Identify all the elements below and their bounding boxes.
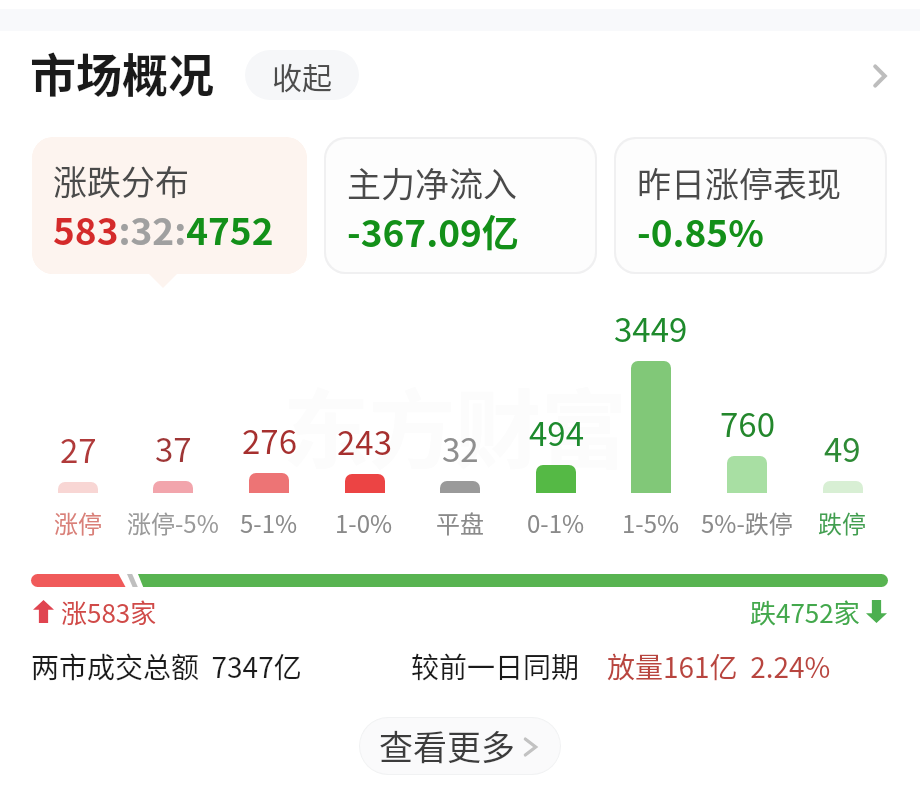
staticText: 两市成交总额 7347亿 (31, 646, 302, 687)
staticText: -0.85% (637, 204, 764, 258)
staticText: 276 (242, 416, 297, 464)
button[interactable] (748, 595, 890, 629)
staticText: 跌4752家 (750, 593, 860, 631)
button[interactable] (797, 300, 889, 540)
button[interactable]: 主力净流入 (326, 139, 595, 272)
staticText: 查看更多 (379, 721, 515, 770)
staticText: 760 (720, 399, 775, 447)
staticText: 3449 (614, 304, 688, 352)
staticText: 涨跌分布 (53, 156, 189, 205)
button[interactable]: 查看更多 (360, 718, 560, 774)
staticText: 东方财富 (283, 362, 627, 487)
staticText: 5-1% (240, 505, 298, 540)
button[interactable] (32, 300, 124, 540)
button[interactable]: 涨跌分布 (32, 137, 307, 274)
staticText: 平盘 (436, 505, 484, 540)
button[interactable]: 昨日涨停表现 (616, 139, 885, 272)
button[interactable] (223, 300, 315, 540)
staticText: 昨日涨停表现 (637, 158, 841, 207)
staticText: 1-5% (622, 505, 680, 540)
staticText: 涨停-5% (127, 505, 219, 540)
button[interactable] (30, 595, 162, 629)
button[interactable] (319, 300, 411, 540)
button[interactable] (701, 300, 793, 540)
staticText: 市场概况 (30, 39, 214, 106)
staticText: 涨583家 (61, 593, 157, 631)
button[interactable] (414, 300, 506, 540)
staticText: 32 (442, 424, 479, 472)
staticText: 5%-跌停 (701, 505, 793, 540)
staticText: 涨停 (54, 505, 102, 540)
button[interactable]: 收起 (245, 50, 359, 100)
staticText: 27 (60, 425, 97, 473)
button[interactable] (510, 300, 602, 540)
staticText: 放量161亿 2.24% (607, 646, 831, 687)
button[interactable] (127, 300, 219, 540)
staticText: 583:32:4752 (53, 202, 274, 256)
button[interactable]: 市场概况 (24, 34, 220, 111)
staticText: 37 (155, 424, 192, 472)
staticText: 49 (824, 424, 861, 472)
staticText: 跌停 (818, 505, 866, 540)
staticText: 较前一日同期 (411, 646, 580, 687)
staticText: 收起 (272, 54, 332, 97)
button[interactable] (605, 300, 697, 540)
staticText: 主力净流入 (347, 158, 517, 207)
staticText: 1-0% (335, 505, 393, 540)
button[interactable]: 查看市场概况详情 (852, 52, 908, 100)
staticText: 243 (337, 417, 392, 465)
staticText: 0-1% (527, 505, 585, 540)
staticText: 494 (529, 408, 584, 456)
staticText: -367.09亿 (347, 204, 519, 258)
